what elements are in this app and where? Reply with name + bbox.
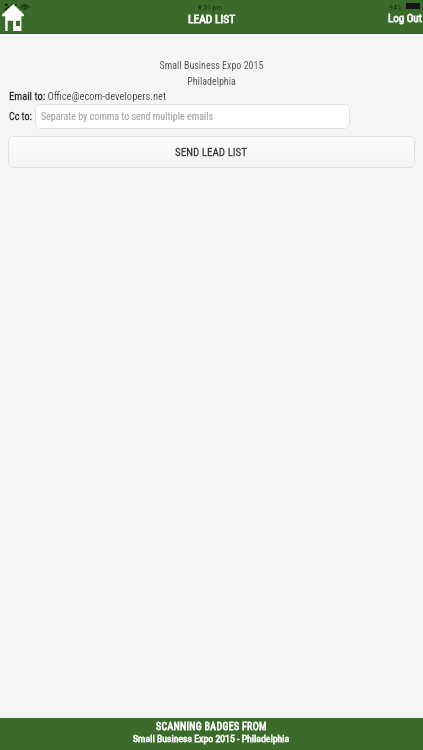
staticText: Small Business Expo 2015 - Philadelphia [133,733,290,744]
button[interactable]: SEND LEAD LIST [8,136,415,168]
staticText: Small Business Expo 2015 [0,60,423,72]
button[interactable]: Separate by comma to send multiple email… [35,104,350,129]
staticText: SCANNING BADGES FROM [156,721,267,733]
staticText: LEAD LIST [188,12,236,25]
staticText: 8:51 pm [198,3,222,12]
staticText: SEND LEAD LIST [175,146,248,159]
staticText: Cc to: [9,111,32,123]
staticText: Email to: Office@ecom-developers.net [9,90,167,102]
button[interactable]: Log Out [382,9,423,28]
staticText: Log Out [388,12,422,25]
staticText: Separate by comma to send multiple email… [41,111,214,123]
staticText: 94% [389,3,402,12]
button[interactable]: Home [0,2,26,33]
staticText: Philadelphia [0,76,423,88]
